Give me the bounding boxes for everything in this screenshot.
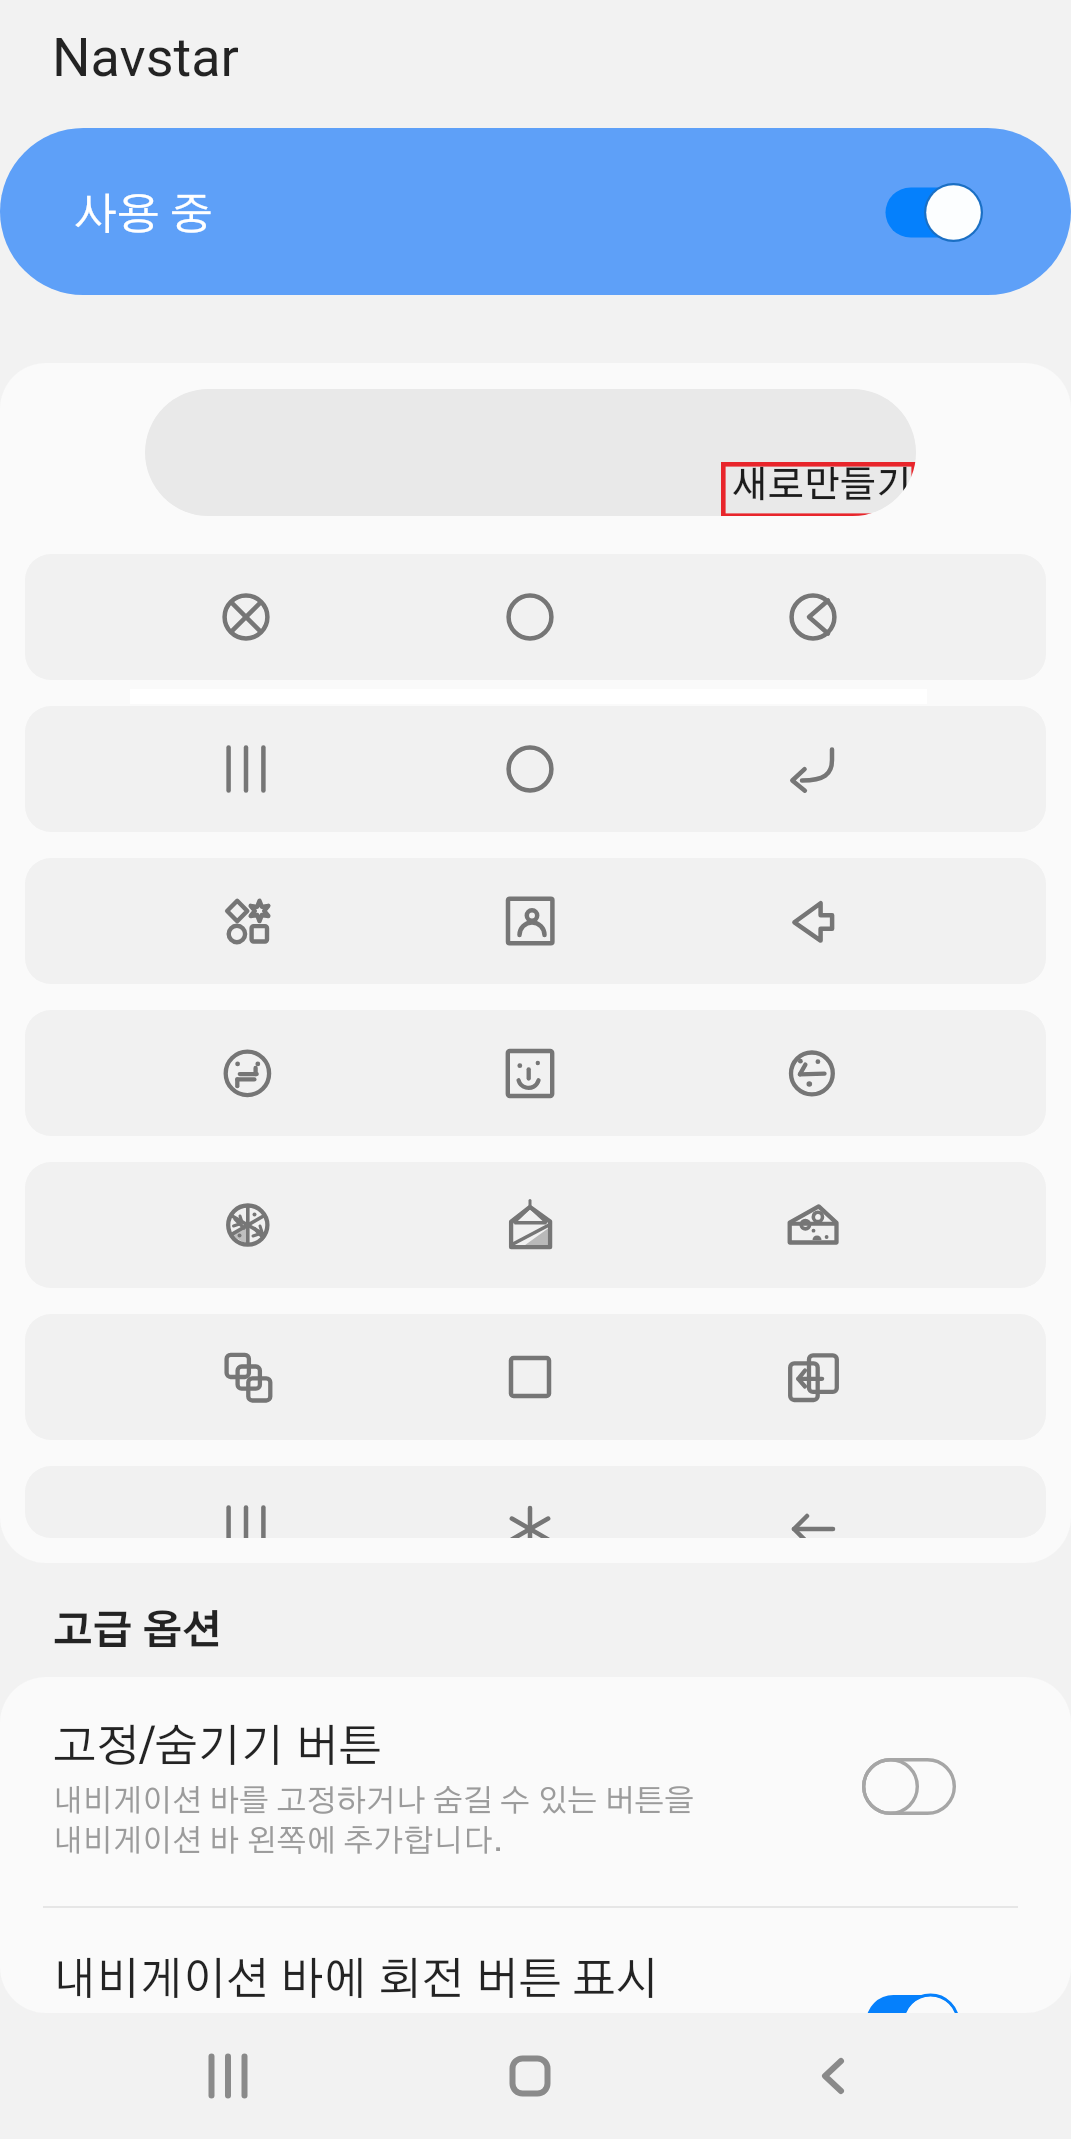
button[interactable]	[25, 1010, 1046, 1136]
staticText: 고정/숨기기 버튼	[53, 1725, 382, 1770]
button[interactable]: 새로만들기	[145, 389, 916, 516]
button[interactable]: 고정/숨기기 버튼	[0, 1677, 1071, 1906]
staticText: 고급 옵션	[53, 1612, 223, 1652]
button[interactable]: 사용 중	[0, 128, 1071, 295]
button[interactable]: Home	[453, 2013, 606, 2139]
button[interactable]: Recent apps	[151, 2013, 304, 2139]
button[interactable]: 내비게이션 바에 회전 버튼 표시	[0, 1908, 1071, 2013]
button[interactable]	[25, 1162, 1046, 1288]
staticText: 내비게이션 바를 고정하거나 숨길 수 있는 버튼을 내비게이션 바 왼쪽에 추…	[53, 1786, 695, 1857]
button[interactable]	[25, 858, 1046, 984]
staticText: 내비게이션 바에 회전 버튼 표시	[53, 1958, 660, 2003]
button[interactable]	[25, 554, 1046, 680]
button[interactable]	[25, 1314, 1046, 1440]
staticText: Navstar	[52, 26, 239, 89]
button[interactable]: Back	[756, 2013, 909, 2139]
staticText: 새로만들기	[732, 467, 912, 504]
button[interactable]	[25, 1466, 1046, 1538]
button[interactable]	[25, 706, 1046, 832]
staticText: 사용 중	[75, 194, 213, 238]
